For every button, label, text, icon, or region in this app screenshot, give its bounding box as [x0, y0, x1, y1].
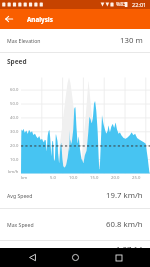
staticText: 60.8 km/h: [106, 219, 143, 230]
staticText: Avg Speed: [7, 192, 33, 199]
staticText: 40.0: [10, 115, 19, 121]
staticText: 22:01: [132, 1, 147, 9]
staticText: 19.7 km/h: [106, 190, 143, 201]
staticText: Max Speed: [7, 221, 34, 228]
staticText: 20.0: [111, 175, 120, 181]
button[interactable]: Max Elevation: [0, 29, 150, 52]
button[interactable]: Moving Time: [0, 241, 150, 257]
staticText: 10.0: [10, 157, 19, 163]
button[interactable]: Avg Speed: [0, 182, 150, 208]
staticText: 5.0: [50, 175, 56, 181]
button[interactable]: Home: [63, 248, 87, 267]
staticText: 60.0: [10, 87, 19, 93]
button[interactable]: Recent apps: [107, 248, 131, 267]
staticText: km/h: [8, 169, 19, 175]
staticText: 15.0: [90, 175, 99, 181]
staticText: 1:07:14: [116, 244, 143, 255]
staticText: %83: [116, 1, 126, 8]
staticText: 30.0: [10, 129, 19, 135]
staticText: Max Elevation: [7, 37, 41, 44]
staticText: km: [21, 175, 28, 181]
button[interactable]: Back: [20, 248, 44, 267]
staticText: 10.0: [69, 175, 78, 181]
staticText: 130 m: [120, 35, 143, 46]
button[interactable]: Max Speed: [0, 209, 150, 240]
staticText: 25.0: [132, 175, 141, 181]
staticText: Moving Time: [7, 246, 39, 253]
button[interactable]: Back: [0, 9, 18, 29]
staticText: 50.0: [10, 101, 19, 107]
staticText: Speed: [7, 57, 27, 66]
staticText: 20.0: [10, 143, 19, 149]
staticText: Analysis: [27, 15, 53, 24]
